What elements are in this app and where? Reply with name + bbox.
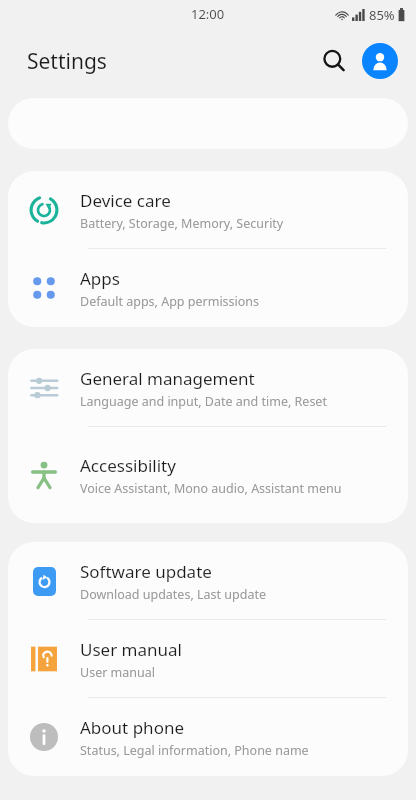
staticText: Language and input, Date and time, Reset (80, 393, 327, 410)
button[interactable]: Apps (8, 249, 408, 327)
staticText: User manual (80, 638, 182, 661)
staticText: User manual (80, 664, 155, 681)
button[interactable]: Device care (8, 171, 408, 249)
button[interactable]: User manual (8, 620, 408, 698)
button[interactable]: Account (362, 43, 398, 79)
staticText: About phone (80, 716, 185, 739)
staticText: Settings (27, 47, 107, 76)
staticText: Accessibility (80, 454, 176, 477)
staticText: Software update (80, 560, 212, 583)
button[interactable]: Software update (8, 542, 408, 620)
staticText: Download updates, Last update (80, 586, 266, 603)
button[interactable]: About phone (8, 698, 408, 776)
staticText: Battery, Storage, Memory, Security (80, 215, 284, 232)
staticText: Apps (80, 267, 120, 290)
staticText: Status, Legal information, Phone name (80, 742, 309, 759)
staticText: Device care (80, 189, 171, 212)
staticText: General management (80, 367, 255, 390)
staticText: Voice Assistant, Mono audio, Assistant m… (80, 480, 342, 497)
button[interactable]: General management (8, 349, 408, 427)
staticText: Default apps, App permissions (80, 293, 260, 310)
staticText: 12:00 (191, 5, 225, 23)
button[interactable]: Search (312, 39, 356, 83)
button[interactable]: Accessibility (8, 427, 408, 523)
staticText: 85% (369, 6, 395, 24)
